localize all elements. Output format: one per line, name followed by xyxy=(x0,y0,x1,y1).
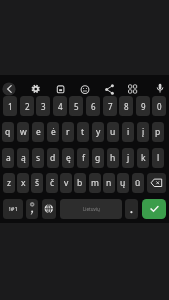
staticText: w xyxy=(20,126,27,138)
staticText: g xyxy=(95,152,101,164)
button[interactable]: 7 xyxy=(103,96,117,116)
button[interactable]: k xyxy=(137,148,149,168)
staticText: 9 xyxy=(141,101,146,112)
button[interactable]: w xyxy=(17,122,29,142)
button[interactable]: m xyxy=(89,173,101,193)
staticText: f xyxy=(82,152,85,164)
button[interactable]: ė xyxy=(47,122,59,142)
staticText: Lietuvių xyxy=(83,206,100,212)
staticText: u xyxy=(110,126,116,138)
button[interactable]: r xyxy=(62,122,74,142)
button[interactable]: į xyxy=(137,122,149,142)
button[interactable]: 1 xyxy=(3,96,17,116)
staticText: a xyxy=(6,152,11,164)
button[interactable]: ą xyxy=(17,148,29,168)
staticText: d xyxy=(50,152,56,164)
button[interactable]: d xyxy=(47,148,59,168)
button[interactable] xyxy=(26,199,38,219)
staticText: q xyxy=(5,126,11,138)
button[interactable]: v xyxy=(60,173,72,193)
button[interactable]: ū xyxy=(132,173,144,193)
button[interactable]: 6 xyxy=(86,96,100,116)
staticText: ų xyxy=(120,177,126,189)
staticText: t xyxy=(81,126,85,138)
staticText: 2 xyxy=(25,101,30,112)
staticText: e xyxy=(36,126,41,138)
staticText: !#1 xyxy=(9,205,18,213)
staticText: 4 xyxy=(58,101,63,112)
button[interactable]: j xyxy=(122,148,134,168)
button[interactable]: 5 xyxy=(69,96,83,116)
staticText: š xyxy=(35,177,40,189)
staticText: č xyxy=(50,177,55,189)
staticText: v xyxy=(64,177,69,189)
button[interactable]: g xyxy=(92,148,104,168)
staticText: k xyxy=(141,152,146,164)
button[interactable]: f xyxy=(77,148,89,168)
button[interactable]: l xyxy=(152,148,164,168)
staticText: 0 xyxy=(157,101,162,112)
button[interactable]: ę xyxy=(62,148,74,168)
button[interactable]: Lietuvių xyxy=(60,199,122,219)
button[interactable] xyxy=(42,199,56,219)
staticText: j xyxy=(127,152,130,164)
button[interactable]: e xyxy=(32,122,44,142)
staticText: ū xyxy=(135,177,141,189)
staticText: y xyxy=(96,126,101,138)
button[interactable]: x xyxy=(17,173,29,193)
staticText: ę xyxy=(66,152,71,164)
button[interactable]: s xyxy=(32,148,44,168)
staticText: 3 xyxy=(41,101,46,112)
button[interactable]: 9 xyxy=(136,96,150,116)
button[interactable]: y xyxy=(92,122,104,142)
staticText: p xyxy=(155,126,161,138)
button[interactable]: 0 xyxy=(152,96,166,116)
staticText: z xyxy=(7,177,11,189)
button[interactable]: n xyxy=(103,173,115,193)
button[interactable]: !#1 xyxy=(3,199,23,219)
staticText: l xyxy=(157,152,160,164)
staticText: ą xyxy=(21,152,26,164)
button[interactable]: q xyxy=(2,122,14,142)
button[interactable]: z xyxy=(3,173,15,193)
staticText: į xyxy=(142,126,145,138)
staticText: h xyxy=(110,152,116,164)
button[interactable]: a xyxy=(2,148,14,168)
button[interactable] xyxy=(142,199,166,219)
staticText: x xyxy=(21,177,26,189)
staticText: n xyxy=(106,177,112,189)
button[interactable]: 3 xyxy=(36,96,50,116)
button[interactable]: ų xyxy=(117,173,129,193)
button[interactable] xyxy=(125,199,138,219)
staticText: 7 xyxy=(108,101,113,112)
staticText: 1 xyxy=(8,101,13,112)
button[interactable] xyxy=(147,173,166,193)
staticText: 6 xyxy=(91,101,96,112)
button[interactable]: 8 xyxy=(119,96,133,116)
button[interactable]: 2 xyxy=(20,96,34,116)
staticText: s xyxy=(36,152,41,164)
staticText: i xyxy=(127,126,130,138)
staticText: ė xyxy=(51,126,56,138)
button[interactable]: h xyxy=(107,148,119,168)
button[interactable]: č xyxy=(46,173,58,193)
staticText: r xyxy=(66,126,70,138)
staticText: 5 xyxy=(74,101,79,112)
staticText: b xyxy=(77,177,83,189)
staticText: 8 xyxy=(124,101,129,112)
button[interactable]: b xyxy=(74,173,86,193)
button[interactable]: i xyxy=(122,122,134,142)
button[interactable]: u xyxy=(107,122,119,142)
button[interactable]: t xyxy=(77,122,89,142)
button[interactable]: 4 xyxy=(53,96,67,116)
staticText: m xyxy=(91,177,99,189)
button[interactable]: š xyxy=(31,173,43,193)
button[interactable]: p xyxy=(152,122,164,142)
